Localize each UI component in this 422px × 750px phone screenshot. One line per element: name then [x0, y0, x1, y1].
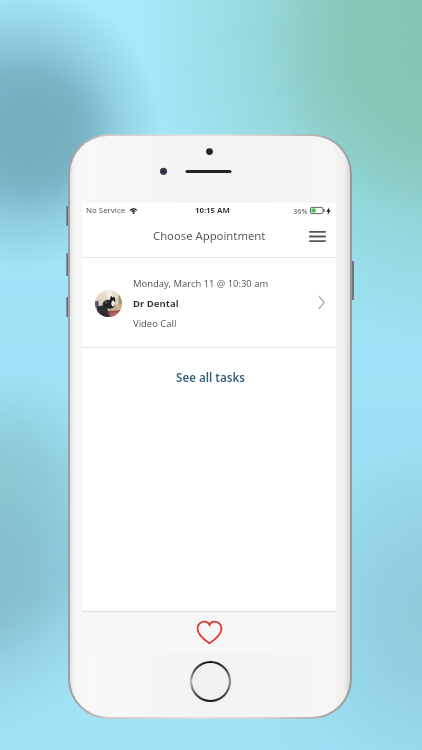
- staticText: 36%: [293, 206, 308, 216]
- button[interactable]: See all tasks: [82, 348, 336, 406]
- staticText: Choose Appointment: [153, 228, 266, 243]
- staticText: Video Call: [133, 317, 177, 330]
- staticText: Monday, March 11 @ 10:30 am: [133, 277, 269, 290]
- button[interactable]: Menu: [304, 223, 330, 249]
- staticText: No Service: [86, 205, 126, 216]
- button[interactable]: Favourites: [192, 615, 226, 649]
- staticText: See all tasks: [176, 370, 246, 386]
- button[interactable]: Monday, March 11 @ 10:30 am: [82, 258, 336, 347]
- staticText: Dr Dental: [133, 297, 179, 310]
- staticText: 10:15 AM: [195, 205, 230, 216]
